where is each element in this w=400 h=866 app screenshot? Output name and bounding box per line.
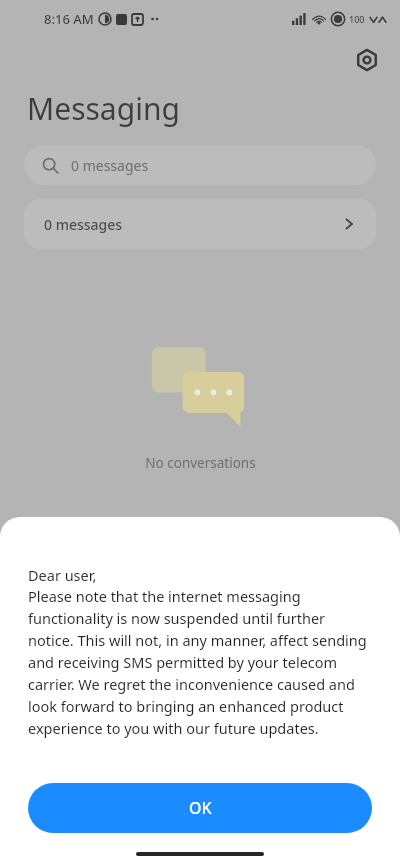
button[interactable]: Settings xyxy=(350,43,384,77)
staticText: 100 xyxy=(349,13,365,25)
staticText: Messaging xyxy=(27,88,180,129)
staticText: No conversations xyxy=(145,454,256,472)
staticText: 0 messages xyxy=(44,215,123,234)
staticText: 0 messages xyxy=(71,156,149,175)
button[interactable]: 0 messages xyxy=(24,145,376,185)
staticText: Dear user, Please note that the internet… xyxy=(28,565,372,739)
button[interactable]: OK xyxy=(28,783,372,833)
staticText: 8:16 AM xyxy=(44,10,94,28)
staticText: OK xyxy=(189,797,212,819)
button[interactable]: 0 messages xyxy=(24,199,376,249)
